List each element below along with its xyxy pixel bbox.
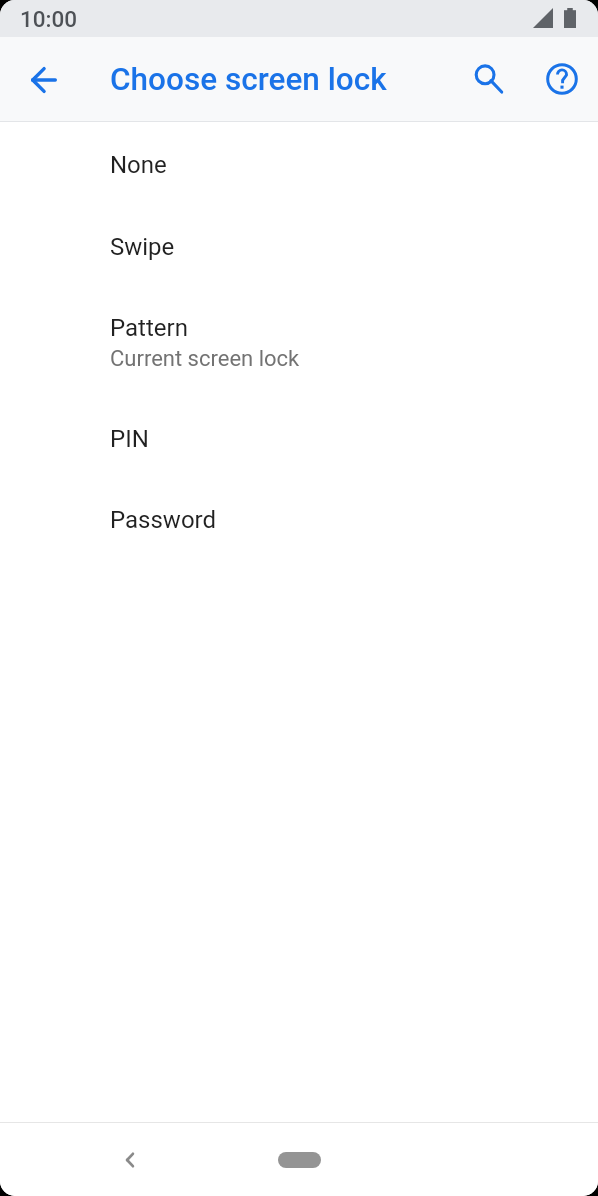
button[interactable]: Password	[0, 453, 598, 534]
button[interactable]: Search	[456, 47, 521, 112]
staticText: None	[110, 151, 167, 179]
button[interactable]: None	[0, 122, 598, 179]
staticText: Password	[110, 506, 217, 534]
button[interactable]: PIN	[0, 372, 598, 453]
button[interactable]: Navigate up	[11, 47, 76, 112]
staticText: PIN	[110, 425, 149, 453]
button[interactable]: Help	[529, 47, 594, 112]
button[interactable]: Swipe	[0, 179, 598, 261]
button[interactable]: Back	[98, 1128, 162, 1192]
button[interactable]: Home	[254, 1137, 344, 1183]
staticText: Choose screen lock	[110, 61, 387, 98]
staticText: Pattern	[110, 314, 188, 342]
staticText: Current screen lock	[110, 346, 300, 372]
button[interactable]: Pattern	[0, 261, 598, 372]
staticText: Swipe	[110, 233, 175, 261]
staticText: 10:00	[20, 6, 78, 32]
